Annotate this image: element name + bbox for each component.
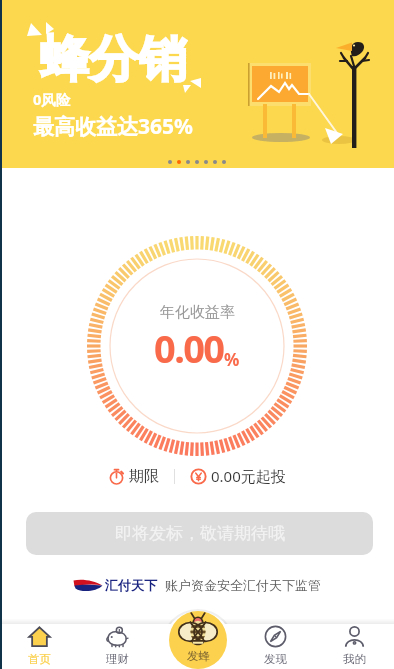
staticText: 最高收益达365% bbox=[33, 112, 193, 141]
staticText: 汇付天下 bbox=[105, 577, 157, 593]
button[interactable]: 首页 bbox=[0, 622, 78, 669]
staticText: 年化收益率 bbox=[160, 303, 235, 322]
staticText: 首页 bbox=[28, 652, 51, 666]
staticText: 0风险 bbox=[33, 89, 71, 109]
staticText: 期限 bbox=[129, 467, 159, 486]
button[interactable]: 理财 bbox=[78, 622, 157, 669]
button[interactable]: 即将发标，敬请期待哦 bbox=[26, 512, 373, 555]
button[interactable]: 我的 bbox=[315, 622, 394, 669]
staticText: 发蜂 bbox=[187, 649, 210, 663]
staticText: 账户资金安全汇付天下监管 bbox=[165, 577, 321, 593]
button[interactable]: 发蜂 bbox=[169, 611, 227, 669]
staticText: 0.00元起投 bbox=[211, 466, 286, 486]
button[interactable]: 发现 bbox=[236, 622, 315, 669]
staticText: 0.00 bbox=[154, 322, 224, 374]
staticText: 发现 bbox=[264, 652, 287, 666]
staticText: 蜂分销 bbox=[40, 29, 187, 91]
staticText: 理财 bbox=[106, 652, 129, 666]
staticText: % bbox=[224, 348, 240, 371]
staticText: 即将发标，敬请期待哦 bbox=[115, 523, 285, 544]
staticText: 我的 bbox=[343, 652, 366, 666]
